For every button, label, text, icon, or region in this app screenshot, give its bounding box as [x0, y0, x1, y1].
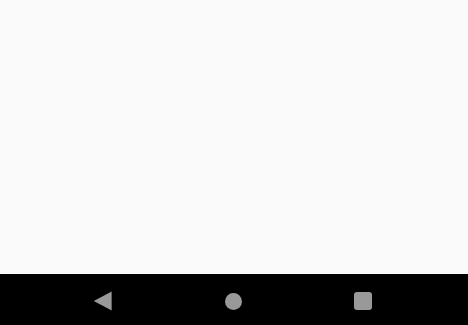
button[interactable]: Recent apps	[339, 277, 387, 325]
button[interactable]: Home	[209, 277, 257, 325]
button[interactable]: Back	[79, 277, 127, 325]
